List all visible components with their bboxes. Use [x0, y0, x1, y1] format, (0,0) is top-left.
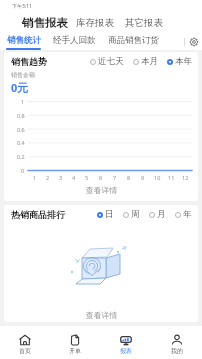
staticText: 3 [59, 174, 63, 181]
staticText: 1 [33, 174, 37, 181]
button[interactable]: 近七天 [90, 56, 124, 67]
staticText: 本年 [175, 56, 192, 67]
staticText: 10 [154, 174, 161, 181]
button[interactable]: 销售统计 [0, 33, 47, 50]
staticText: 销售金额 [11, 71, 35, 79]
staticText: 年 [183, 209, 192, 220]
staticText: 2 [46, 174, 50, 181]
staticText: 销售统计 [7, 35, 41, 46]
button[interactable]: 经手人回款 [47, 33, 102, 48]
button[interactable]: 商品销售订货 [102, 33, 165, 48]
staticText: 5 [85, 174, 89, 181]
staticText: 0元 [11, 80, 29, 95]
staticText: 经手人回款 [53, 35, 96, 46]
button[interactable]: 查看详情 [11, 184, 192, 196]
staticText: 1 [21, 98, 25, 105]
button[interactable]: 销售报表 [22, 16, 68, 30]
staticText: 8 [127, 174, 131, 181]
staticText: 0.8 [17, 112, 25, 119]
staticText: 11 [168, 174, 175, 181]
staticText: 首页 [19, 347, 31, 355]
staticText: 周 [131, 209, 140, 220]
staticText: 查看详情 [86, 185, 118, 195]
staticText: 4 [72, 174, 76, 181]
button[interactable]: 我的 [151, 326, 202, 359]
staticText: 热销商品排行 [11, 209, 65, 220]
button[interactable]: 库存报表 [76, 17, 114, 29]
staticText: 0 [21, 167, 25, 174]
button[interactable]: 周 [123, 209, 140, 220]
button[interactable]: 日 [97, 209, 114, 220]
staticText: 7 [113, 174, 117, 181]
staticText: 查看详情 [86, 310, 118, 320]
staticText: 近七天 [98, 56, 124, 67]
staticText: 12 [182, 174, 189, 181]
button[interactable]: 其它报表 [125, 17, 163, 29]
staticText: 下午3:11 [12, 3, 32, 10]
button[interactable]: 设置 [185, 33, 202, 50]
staticText: 本月 [141, 56, 158, 67]
button[interactable]: 开单 [50, 326, 100, 359]
staticText: 开单 [69, 347, 81, 355]
button[interactable]: 报表 [100, 326, 151, 359]
staticText: 0.4 [17, 139, 25, 146]
staticText: 0.6 [17, 126, 25, 133]
staticText: 日 [105, 209, 114, 220]
staticText: 我的 [171, 347, 183, 355]
staticText: 6 [99, 174, 103, 181]
staticText: 月 [157, 209, 166, 220]
staticText: 9 [141, 174, 145, 181]
button[interactable]: 年 [175, 209, 192, 220]
staticText: 销售趋势 [11, 56, 47, 67]
staticText: 商品销售订货 [108, 35, 159, 46]
button[interactable]: 本月 [133, 56, 158, 67]
button[interactable]: 查看详情 [11, 310, 192, 320]
staticText: 0.2 [17, 153, 25, 160]
button[interactable]: 本年 [167, 56, 192, 67]
staticText: 报表 [120, 347, 132, 355]
button[interactable]: 月 [149, 209, 166, 220]
button[interactable]: 首页 [0, 326, 50, 359]
